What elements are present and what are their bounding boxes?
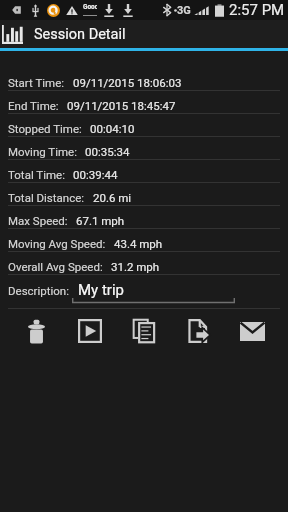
button[interactable]: Start Time: xyxy=(0,68,288,91)
staticText: Description: xyxy=(8,284,70,297)
staticText: Overall Avg Speed: xyxy=(8,260,103,273)
button[interactable]: Copy xyxy=(131,318,157,344)
staticText: 00:39:44 xyxy=(73,168,118,181)
button[interactable]: Description: xyxy=(0,275,288,309)
button[interactable]: Total Time: xyxy=(0,160,288,183)
button[interactable]: Email xyxy=(239,318,265,344)
staticText: 00:35:34 xyxy=(85,145,130,158)
staticText: 31.2 mph xyxy=(111,260,160,273)
staticText: 09/11/2015 18:06:03 xyxy=(73,76,182,89)
button[interactable]: Total Distance: xyxy=(0,183,288,206)
button[interactable]: Moving Time: xyxy=(0,137,288,160)
staticText: Moving Time: xyxy=(8,145,77,158)
button[interactable]: Stopped Time: xyxy=(0,114,288,137)
staticText: Start Time: xyxy=(8,76,65,89)
staticText: 00:04:10 xyxy=(90,122,135,135)
staticText: 43.4 mph xyxy=(114,237,163,250)
staticText: 20.6 mi xyxy=(93,191,132,204)
button[interactable]: Moving Avg Speed: xyxy=(0,229,288,252)
staticText: Good xyxy=(83,3,97,11)
button[interactable]: Max Speed: xyxy=(0,206,288,229)
staticText: Moving Avg Speed: xyxy=(8,237,106,250)
button[interactable]: Overall Avg Speed: xyxy=(0,252,288,275)
staticText: My trip xyxy=(78,281,124,299)
staticText: Session Detail xyxy=(34,26,126,43)
button[interactable]: Export xyxy=(185,318,211,344)
staticText: End Time: xyxy=(8,99,59,112)
staticText: Total Distance: xyxy=(8,191,85,204)
button[interactable]: Play xyxy=(77,318,103,344)
button[interactable]: Delete xyxy=(23,318,49,344)
staticText: Max Speed: xyxy=(8,214,68,227)
button[interactable]: End Time: xyxy=(0,91,288,114)
staticText: 3G xyxy=(177,4,191,17)
staticText: 67.1 mph xyxy=(76,214,125,227)
staticText: 09/11/2015 18:45:47 xyxy=(67,99,176,112)
button[interactable]: Session Detail xyxy=(0,20,288,48)
staticText: 2:57 PM xyxy=(229,1,285,19)
staticText: Total Time: xyxy=(8,168,65,181)
staticText: Stopped Time: xyxy=(8,122,82,135)
